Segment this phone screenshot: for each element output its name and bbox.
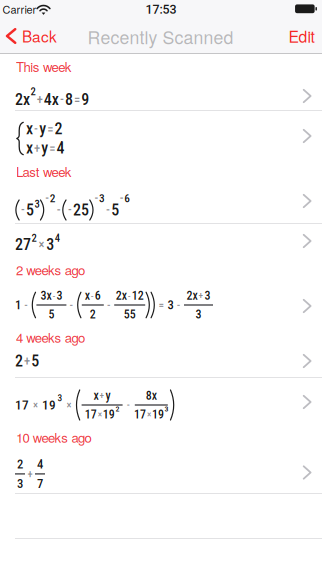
staticText: = — [74, 92, 80, 107]
staticText: 2 weeks ago — [16, 260, 85, 279]
staticText: - — [127, 399, 130, 411]
staticText: 3 — [204, 289, 210, 303]
staticText: 4 — [56, 139, 64, 158]
staticText: × — [98, 409, 102, 420]
staticText: 3 — [58, 392, 63, 403]
staticText: 2 — [15, 352, 23, 370]
staticText: 3 — [168, 298, 174, 312]
staticText: 9 — [81, 90, 89, 109]
staticText: x — [26, 139, 33, 158]
staticText: 12 — [132, 289, 144, 303]
staticText: 17 — [85, 407, 97, 421]
staticText: 10 weeks ago — [16, 427, 92, 446]
button[interactable]: 2 — [0, 449, 322, 493]
staticText: = — [49, 141, 55, 155]
staticText: 8 — [65, 90, 73, 109]
staticText: 2 — [54, 119, 62, 138]
staticText: + — [24, 354, 30, 368]
staticText: 2 — [50, 192, 56, 205]
staticText: Recently Scanned — [87, 24, 233, 49]
staticText: 17 — [15, 397, 29, 413]
staticText: Back — [22, 25, 57, 47]
staticText: - — [45, 191, 49, 206]
staticText: × — [33, 399, 38, 411]
staticText: - — [94, 191, 98, 206]
staticText: 3x — [40, 289, 51, 303]
button[interactable]: 17 — [0, 377, 322, 426]
staticText: - — [68, 203, 72, 217]
staticText: 5 — [31, 352, 39, 370]
staticText: - — [128, 290, 131, 301]
button[interactable]: 27 — [0, 224, 322, 258]
staticText: 3 — [46, 235, 54, 254]
staticText: 3 — [165, 404, 169, 413]
staticText: - — [52, 290, 55, 301]
staticText: 55 — [124, 307, 136, 321]
staticText: 3 — [17, 476, 23, 491]
button[interactable]: Edit — [280, 21, 322, 51]
staticText: × — [67, 399, 72, 411]
staticText: - — [60, 92, 64, 107]
staticText: 4 — [37, 457, 43, 472]
staticText: - — [177, 298, 181, 312]
staticText: 25 — [73, 201, 89, 219]
staticText: 4 weeks ago — [16, 327, 85, 346]
staticText: Last week — [16, 162, 72, 181]
staticText: 17 — [134, 407, 146, 421]
staticText: - — [107, 298, 111, 312]
staticText: x — [85, 289, 90, 303]
staticText: + — [100, 390, 105, 401]
staticText: 2 — [90, 307, 96, 321]
staticText: 6 — [124, 192, 130, 205]
staticText: 19 — [42, 397, 56, 413]
staticText: - — [57, 203, 61, 217]
staticText: 5 — [48, 307, 54, 321]
staticText: 2x — [186, 289, 197, 303]
staticText: 8x — [146, 389, 157, 403]
staticText: Edit — [288, 25, 314, 47]
staticText: 19 — [103, 407, 115, 421]
staticText: - — [106, 203, 110, 217]
button[interactable]: - — [0, 182, 322, 222]
staticText: × — [147, 409, 151, 420]
staticText: x — [94, 389, 99, 403]
staticText: 5 — [111, 201, 119, 219]
staticText: - — [24, 298, 28, 312]
button[interactable]: 2x — [0, 79, 322, 113]
staticText: 2 — [31, 85, 36, 98]
staticText: - — [34, 121, 38, 136]
staticText: 4x — [44, 90, 59, 109]
staticText: 2 — [32, 232, 37, 244]
button[interactable]: Back — [1, 21, 57, 51]
staticText: + — [34, 141, 40, 155]
staticText: y — [106, 389, 111, 403]
staticText: 17:53 — [145, 2, 176, 17]
staticText: This week — [16, 57, 72, 76]
staticText: 2x — [116, 289, 127, 303]
staticText: - — [21, 203, 25, 217]
staticText: y — [41, 139, 48, 158]
staticText: - — [120, 191, 124, 206]
staticText: = — [47, 121, 53, 136]
staticText: - — [91, 290, 94, 301]
staticText: 6 — [95, 289, 101, 303]
staticText: Carrier — [2, 1, 36, 17]
staticText: 2 — [115, 404, 119, 413]
staticText: + — [27, 468, 32, 480]
staticText: 3 — [56, 289, 62, 303]
staticText: 2x — [15, 90, 30, 109]
staticText: 19 — [152, 407, 164, 421]
button[interactable]: x — [0, 111, 322, 161]
staticText: 3 — [35, 198, 40, 210]
staticText: + — [198, 290, 203, 301]
button[interactable]: 1 — [0, 281, 322, 327]
staticText: 5 — [26, 201, 34, 219]
staticText: × — [38, 237, 44, 252]
staticText: = — [158, 298, 164, 312]
staticText: 4 — [55, 232, 60, 244]
staticText: 2 — [17, 457, 23, 472]
button[interactable]: 2 — [0, 346, 322, 376]
staticText: x — [26, 119, 33, 138]
staticText: 3 — [99, 192, 105, 205]
staticText: 27 — [15, 235, 31, 254]
